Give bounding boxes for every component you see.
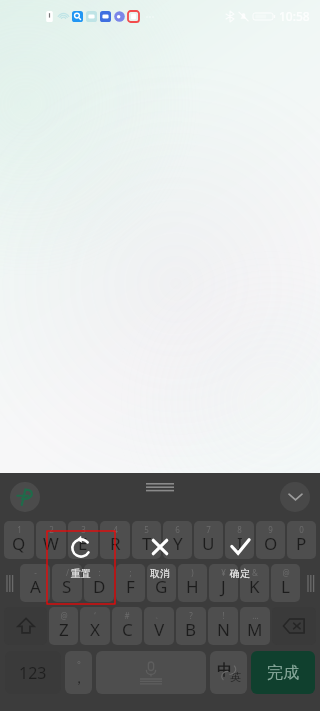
button[interactable]: Cancel xyxy=(134,535,186,580)
button[interactable]: 5 xyxy=(132,521,161,559)
staticText: 9 xyxy=(268,524,273,535)
button[interactable]: 7 xyxy=(194,521,223,559)
staticText: @ xyxy=(282,567,290,578)
button[interactable]: / xyxy=(52,564,82,602)
staticText: 123 xyxy=(19,662,47,684)
staticText: : xyxy=(98,567,101,578)
button[interactable]: ; xyxy=(116,564,145,602)
staticText: ? xyxy=(189,610,193,621)
staticText: - xyxy=(34,567,37,578)
staticText: 取消 xyxy=(150,567,170,580)
staticText: Z xyxy=(59,618,69,641)
staticText: J xyxy=(221,575,226,598)
staticText: & xyxy=(252,567,258,578)
staticText: 4 xyxy=(113,524,118,535)
staticText: O xyxy=(264,532,278,555)
button[interactable]: : xyxy=(84,564,114,602)
staticText: ) xyxy=(191,567,194,578)
staticText: Y xyxy=(173,532,183,555)
button[interactable]: Shift xyxy=(4,607,47,645)
staticText: ° xyxy=(77,658,81,670)
staticText: M xyxy=(247,618,263,641)
staticText: E xyxy=(78,532,88,555)
button[interactable]: Switch Chinese English xyxy=(210,651,247,694)
staticText: V xyxy=(154,618,165,641)
button[interactable]: 2 xyxy=(36,521,66,559)
button[interactable]: 4 xyxy=(100,521,130,559)
button[interactable]: Confirm xyxy=(214,535,266,580)
button[interactable]: & xyxy=(240,564,269,602)
staticText: ; xyxy=(129,567,132,578)
staticText: N xyxy=(217,618,230,641)
button[interactable]: 3 xyxy=(68,521,98,559)
staticText: A xyxy=(30,575,41,598)
button[interactable]: # xyxy=(112,607,142,645)
staticText: T xyxy=(142,532,152,555)
staticText: I xyxy=(237,532,243,555)
button[interactable]: ( xyxy=(147,564,176,602)
staticText: ， xyxy=(72,670,86,688)
staticText: 英 xyxy=(230,670,241,684)
staticText: H xyxy=(186,575,199,598)
button[interactable]: Backspace xyxy=(272,607,316,645)
staticText: 8 xyxy=(237,524,242,535)
button[interactable]: @ xyxy=(271,564,300,602)
button[interactable]: 8 xyxy=(225,521,254,559)
staticText: 2 xyxy=(49,524,54,535)
staticText: X xyxy=(90,618,100,641)
staticText: ¥ xyxy=(221,567,226,578)
staticText: S xyxy=(62,575,72,598)
button[interactable]: 123 xyxy=(5,651,61,694)
staticText: L xyxy=(281,575,290,598)
staticText: 1 xyxy=(17,524,22,535)
staticText: … xyxy=(252,610,259,621)
button[interactable]: 9 xyxy=(256,521,285,559)
button[interactable]: - xyxy=(20,564,50,602)
staticText: F xyxy=(126,575,135,598)
staticText: U xyxy=(202,532,215,555)
staticText: @ xyxy=(60,610,68,621)
staticText: 0 xyxy=(299,524,304,535)
button[interactable]: … xyxy=(240,607,270,645)
staticText: 7 xyxy=(206,524,211,535)
staticText: 5 xyxy=(144,524,149,535)
button[interactable]: ) xyxy=(178,564,207,602)
staticText: 确定 xyxy=(230,567,250,580)
staticText: / xyxy=(66,567,69,578)
staticText: 3 xyxy=(81,524,86,535)
staticText: ‘ xyxy=(94,610,96,621)
staticText: B xyxy=(185,618,197,641)
button[interactable]: Hide keyboard xyxy=(280,482,310,512)
button[interactable]: Reset xyxy=(55,535,107,580)
staticText: K xyxy=(249,575,260,598)
button[interactable]: 0 xyxy=(287,521,316,559)
staticText: P xyxy=(296,532,307,555)
button[interactable]: ? xyxy=(176,607,206,645)
staticText: 完成 xyxy=(267,663,299,683)
button[interactable]: ‘ xyxy=(80,607,110,645)
button[interactable]: 完成 xyxy=(251,651,315,694)
button[interactable]: 6 xyxy=(163,521,192,559)
staticText: R xyxy=(110,532,121,555)
staticText: 中 xyxy=(217,661,232,680)
button[interactable]: 1 xyxy=(4,521,34,559)
staticText: 10:58 xyxy=(279,8,310,24)
staticText: Q xyxy=(12,532,26,555)
staticText: D xyxy=(93,575,106,598)
staticText: G xyxy=(155,575,168,598)
staticText: 6 xyxy=(175,524,180,535)
staticText: 重置 xyxy=(71,567,91,580)
staticText: # xyxy=(124,610,130,621)
button[interactable]: @ xyxy=(49,607,78,645)
button[interactable]: ° xyxy=(65,651,92,694)
staticText: ! xyxy=(222,610,225,621)
button[interactable]: Input method logo xyxy=(10,482,40,512)
staticText: W xyxy=(43,532,59,555)
staticText: C xyxy=(122,618,133,641)
button[interactable]: ¥ xyxy=(209,564,238,602)
button[interactable]: 、 xyxy=(144,607,174,645)
button[interactable]: ! xyxy=(208,607,238,645)
staticText: ( xyxy=(160,567,163,578)
